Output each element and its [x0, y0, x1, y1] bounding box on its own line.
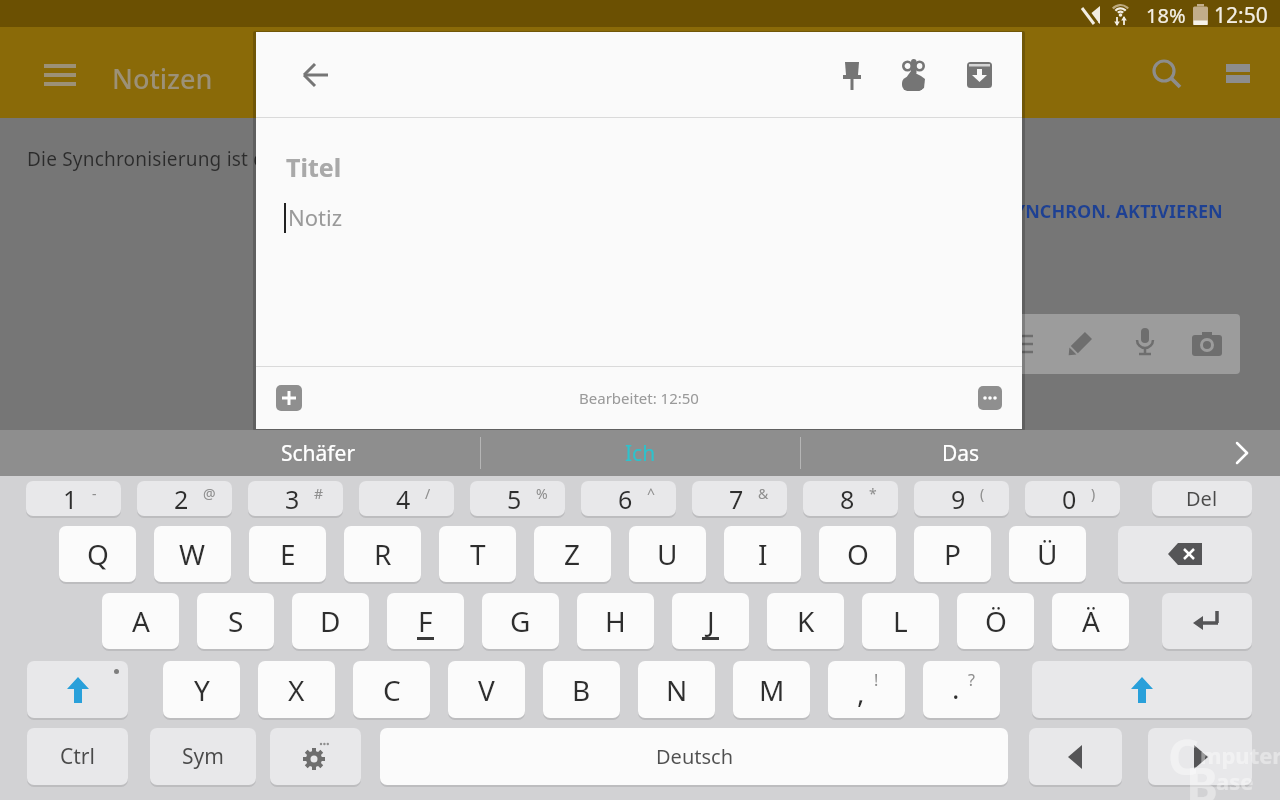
button[interactable]: Del — [1152, 481, 1252, 516]
button[interactable] — [1066, 330, 1094, 358]
staticText: W — [179, 535, 206, 573]
button[interactable] — [1152, 59, 1182, 89]
staticText: E — [280, 535, 296, 573]
staticText: . — [952, 669, 960, 707]
button[interactable] — [26, 481, 121, 516]
button[interactable] — [1134, 328, 1156, 360]
staticText: Die Synchronisierung ist deaktiviert — [27, 146, 351, 172]
staticText: T — [470, 535, 486, 573]
staticText: ase — [1216, 766, 1254, 796]
button[interactable]: Q — [59, 526, 136, 582]
button[interactable] — [137, 481, 232, 516]
button[interactable]: V — [448, 661, 525, 718]
button[interactable] — [842, 62, 862, 90]
staticText: J — [707, 602, 715, 640]
button[interactable] — [1226, 64, 1250, 84]
staticText: O — [847, 535, 869, 573]
button[interactable]: M — [733, 661, 810, 718]
staticText: 1 — [63, 482, 78, 515]
button[interactable]: H — [577, 593, 654, 649]
button[interactable] — [1148, 728, 1252, 785]
staticText: 9 — [951, 482, 966, 515]
button[interactable]: , — [828, 661, 905, 718]
button[interactable] — [1162, 593, 1252, 649]
button[interactable] — [1025, 481, 1120, 516]
button[interactable] — [27, 661, 128, 718]
staticText: V — [478, 671, 495, 709]
button[interactable] — [978, 386, 1002, 410]
button[interactable]: R — [344, 526, 421, 582]
button[interactable] — [44, 64, 76, 88]
staticText: 4 — [396, 482, 411, 515]
staticText: 6 — [618, 482, 633, 515]
button[interactable] — [967, 62, 992, 88]
staticText: U — [657, 535, 678, 573]
staticText: K — [797, 602, 815, 640]
button[interactable]: W — [154, 526, 231, 582]
button[interactable]: Sym — [150, 728, 256, 785]
staticText: , — [857, 673, 865, 711]
button[interactable]: Z — [534, 526, 611, 582]
button[interactable]: P — [914, 526, 991, 582]
button[interactable] — [899, 57, 929, 91]
staticText: / — [425, 484, 431, 503]
button[interactable]: . — [923, 661, 1000, 718]
button[interactable]: C — [353, 661, 430, 718]
staticText: I — [758, 535, 768, 573]
staticText: Bearbeitet: 12:50 — [579, 388, 699, 408]
staticText: # — [314, 484, 324, 503]
button[interactable]: K — [767, 593, 844, 649]
button[interactable]: J — [672, 593, 749, 649]
button[interactable]: B — [543, 661, 620, 718]
button[interactable]: Ö — [957, 593, 1034, 649]
staticText: Y — [194, 671, 210, 709]
staticText: Schäfer — [281, 439, 356, 468]
button[interactable]: D — [292, 593, 369, 649]
button[interactable] — [692, 481, 787, 516]
staticText: 8 — [840, 482, 855, 515]
button[interactable]: X — [258, 661, 335, 718]
button[interactable]: Schäfer — [158, 430, 478, 476]
button[interactable]: Deutsch — [380, 728, 1008, 785]
staticText: Del — [1186, 485, 1218, 512]
button[interactable]: Ä — [1052, 593, 1129, 649]
button[interactable]: G — [482, 593, 559, 649]
button[interactable] — [1118, 526, 1252, 582]
staticText: X — [288, 671, 305, 709]
button[interactable]: Ctrl — [27, 728, 128, 785]
staticText: Z — [564, 535, 581, 573]
button[interactable]: T — [439, 526, 516, 582]
staticText: Das — [942, 439, 980, 468]
button[interactable] — [914, 481, 1009, 516]
button[interactable] — [276, 385, 302, 411]
button[interactable] — [270, 728, 361, 785]
button[interactable]: I — [724, 526, 801, 582]
button[interactable]: U — [629, 526, 706, 582]
button[interactable] — [470, 481, 565, 516]
button[interactable]: Ü — [1009, 526, 1086, 582]
button[interactable] — [1192, 332, 1222, 356]
button[interactable] — [248, 481, 343, 516]
button[interactable]: N — [638, 661, 715, 718]
button[interactable] — [581, 481, 676, 516]
button[interactable]: L — [862, 593, 939, 649]
button[interactable]: Y — [163, 661, 240, 718]
button[interactable]: O — [819, 526, 896, 582]
button[interactable]: A — [102, 593, 179, 649]
staticText: ! — [874, 669, 879, 691]
staticText: Deutsch — [656, 743, 733, 770]
button[interactable] — [1234, 441, 1250, 465]
button[interactable] — [803, 481, 898, 516]
button[interactable]: E — [249, 526, 326, 582]
staticText: * — [869, 484, 877, 503]
staticText: SYNCHRON. AKTIVIEREN — [1004, 199, 1223, 224]
button[interactable]: Ich — [480, 430, 800, 476]
button[interactable] — [1032, 661, 1252, 718]
button[interactable] — [1029, 728, 1122, 785]
button[interactable]: F — [387, 593, 464, 649]
staticText: 18% — [1146, 2, 1186, 26]
button[interactable]: S — [197, 593, 274, 649]
button[interactable] — [359, 481, 454, 516]
button[interactable]: Das — [802, 430, 1120, 476]
button[interactable] — [303, 62, 329, 88]
